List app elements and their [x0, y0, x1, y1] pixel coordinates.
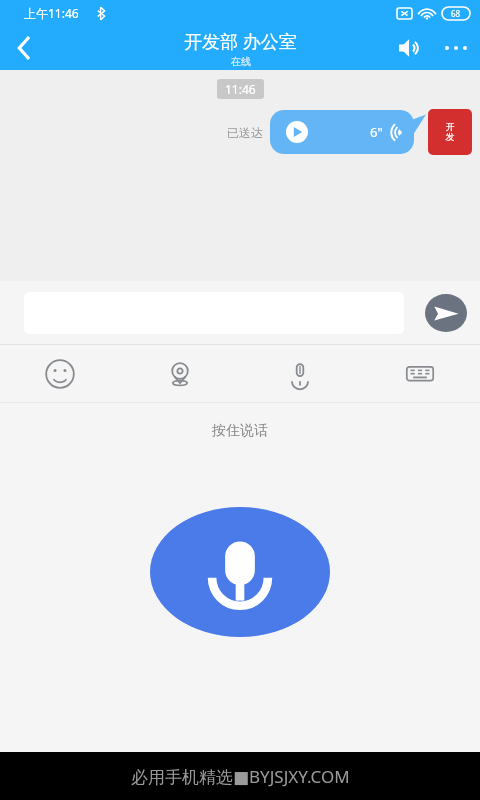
staticText: 开发部 办公室: [184, 29, 297, 54]
staticText: 按住说话: [212, 422, 268, 440]
button[interactable]: Location: [120, 345, 240, 402]
button[interactable]: Hold to talk: [150, 507, 330, 637]
button[interactable]: Voice message: [270, 110, 422, 154]
button[interactable]: Speaker: [388, 26, 432, 70]
button[interactable]: Voice: [240, 345, 360, 402]
button[interactable]: Emoji: [0, 345, 120, 402]
staticText: 11:46: [225, 81, 256, 97]
button[interactable]: 开发: [428, 109, 472, 155]
button[interactable]: Send: [425, 294, 467, 332]
button[interactable]: Back: [0, 26, 48, 70]
staticText: 已送达: [227, 125, 263, 140]
staticText: 上午11:46: [24, 5, 79, 21]
staticText: 必用手机精选■BYJSJXY.COM: [131, 765, 350, 788]
staticText: 开发: [443, 121, 457, 143]
staticText: 68: [451, 8, 461, 19]
button[interactable]: Keyboard: [360, 345, 480, 402]
button[interactable]: More options: [432, 26, 480, 70]
staticText: 6": [370, 123, 383, 141]
staticText: 在线: [231, 55, 251, 68]
